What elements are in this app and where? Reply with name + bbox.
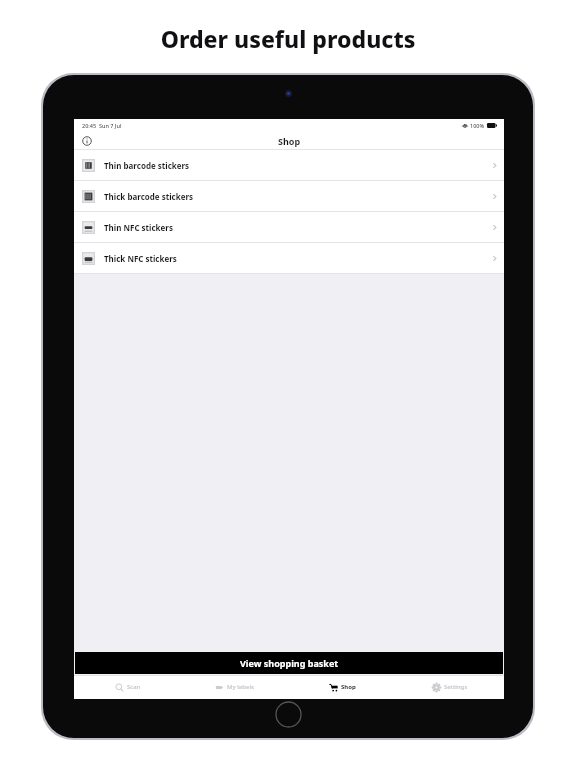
button[interactable]: Thick NFC stickers (74, 243, 504, 273)
staticText: Thick NFC stickers (104, 253, 177, 264)
staticText: Order useful products (0, 23, 576, 54)
button[interactable]: View shopping basket (75, 652, 503, 674)
button[interactable]: Shop (288, 675, 396, 699)
staticText: My labels (227, 683, 254, 691)
button[interactable]: Information (79, 133, 95, 149)
button[interactable]: My labels (181, 675, 288, 699)
staticText: Thin NFC stickers (104, 222, 173, 233)
staticText: Shop (341, 683, 356, 691)
staticText: Shop (278, 135, 301, 147)
staticText: 100% (470, 122, 485, 129)
button[interactable]: Thin barcode stickers (74, 150, 504, 180)
staticText: 20:45 Sun 7 Jul (82, 122, 122, 129)
staticText: View shopping basket (240, 657, 339, 669)
staticText: Thick barcode stickers (104, 191, 194, 202)
button[interactable]: Thick barcode stickers (74, 181, 504, 211)
staticText: Scan (127, 683, 141, 691)
button[interactable]: Thin NFC stickers (74, 212, 504, 242)
staticText: Settings (444, 683, 468, 691)
staticText: Thin barcode stickers (104, 160, 190, 171)
button[interactable]: Settings (396, 675, 504, 699)
button[interactable]: Scan (74, 675, 181, 699)
